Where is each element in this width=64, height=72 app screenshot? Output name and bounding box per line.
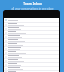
button[interactable] bbox=[4, 47, 59, 50]
button[interactable] bbox=[4, 51, 59, 54]
button[interactable] bbox=[4, 71, 59, 72]
staticText: all your conversations in one place bbox=[11, 7, 54, 11]
button[interactable] bbox=[4, 55, 59, 58]
button[interactable] bbox=[4, 31, 59, 34]
button[interactable] bbox=[4, 63, 59, 66]
button[interactable] bbox=[4, 35, 59, 38]
button[interactable] bbox=[4, 67, 59, 70]
button[interactable] bbox=[4, 18, 59, 22]
button[interactable] bbox=[4, 43, 59, 46]
button[interactable] bbox=[4, 59, 59, 62]
staticText: Team Inbox bbox=[23, 2, 42, 6]
button[interactable] bbox=[4, 27, 59, 30]
button[interactable] bbox=[4, 39, 59, 42]
button[interactable] bbox=[4, 23, 59, 26]
